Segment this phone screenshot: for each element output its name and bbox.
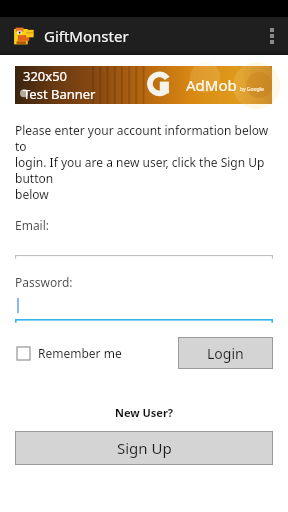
button[interactable]: Sign Up [15,431,273,465]
button[interactable] [15,254,273,260]
staticText: AdMob [186,75,237,95]
staticText: Test Banner [23,85,96,103]
staticText: Remember me [38,345,122,361]
button[interactable]: Login [178,337,273,369]
staticText: Password: [15,274,73,290]
button[interactable]: More options [256,17,288,55]
staticText: login. If you are a new user, click the … [15,154,273,186]
staticText: by Google [240,86,264,93]
staticText: Please enter your account information be… [15,122,273,154]
staticText: Login [207,344,244,363]
staticText: GiftMonster [44,26,129,46]
staticText: Email: [15,217,50,233]
staticText: below [15,186,49,202]
staticText: Sign Up [117,438,172,458]
staticText: 320x50 [23,67,68,85]
staticText: New User? [15,405,273,420]
button[interactable]: 320x50 [15,66,272,104]
button[interactable] [15,318,273,324]
button[interactable] [15,297,273,318]
button[interactable]: Remember me [15,339,124,367]
